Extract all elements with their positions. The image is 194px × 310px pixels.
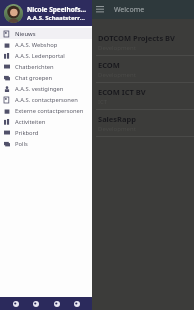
button[interactable]: DOTCOM Projects BV	[0, 29, 194, 55]
staticText: Nieuws	[15, 30, 36, 38]
staticText: Welcome	[114, 5, 145, 15]
button[interactable]: Prikbord	[0, 127, 92, 138]
staticText: DOTCOM Projects BV	[98, 33, 175, 43]
staticText: A.A.S. Webshop	[15, 41, 58, 49]
button[interactable]: Menu	[92, 2, 108, 18]
staticText: A.A.S. Ledenportal	[15, 52, 65, 60]
button[interactable]: Nicole Speelhofstra	[0, 0, 92, 26]
button[interactable]: A.A.S. Webshop	[0, 39, 92, 50]
button[interactable]: Nieuws	[0, 28, 92, 39]
staticText: Nicole Speelhofstra	[27, 5, 88, 14]
button[interactable]: ECOM	[0, 56, 194, 82]
staticText: SalesRapp	[98, 114, 136, 124]
button[interactable]: Facebook	[10, 298, 21, 309]
button[interactable]: Twitter	[30, 298, 41, 309]
button[interactable]: Chatberichten	[0, 61, 92, 72]
staticText: Polls	[15, 140, 28, 148]
button[interactable]: Instagram	[51, 298, 62, 309]
button[interactable]: Chat groepen	[0, 72, 92, 83]
button[interactable]: A.A.S. vestigingen	[0, 83, 92, 94]
button[interactable]: Externe contactpersonen	[0, 105, 92, 116]
staticText: Externe contactpersonen	[15, 107, 84, 115]
button[interactable]: Activiteiten	[0, 116, 92, 127]
staticText: A.A.S. vestigingen	[15, 85, 64, 93]
staticText: ECOM ICT BV	[98, 87, 146, 97]
staticText: A.A.S. contactpersonen	[15, 96, 78, 104]
staticText: A.A.S. Schaatsterrein	[27, 14, 88, 22]
staticText: Chatberichten	[15, 63, 54, 71]
button[interactable]: ECOM ICT BV	[0, 83, 194, 109]
button[interactable]: A.A.S. Ledenportal	[0, 50, 92, 61]
staticText: Activiteiten	[15, 118, 46, 126]
button[interactable]: SalesRapp	[0, 110, 194, 136]
button[interactable]: Polls	[0, 138, 92, 149]
button[interactable]: Website	[71, 298, 82, 309]
staticText: Chat groepen	[15, 74, 53, 82]
staticText: ECOM	[98, 60, 120, 70]
staticText: Prikbord	[15, 129, 39, 137]
button[interactable]: A.A.S. contactpersonen	[0, 94, 92, 105]
